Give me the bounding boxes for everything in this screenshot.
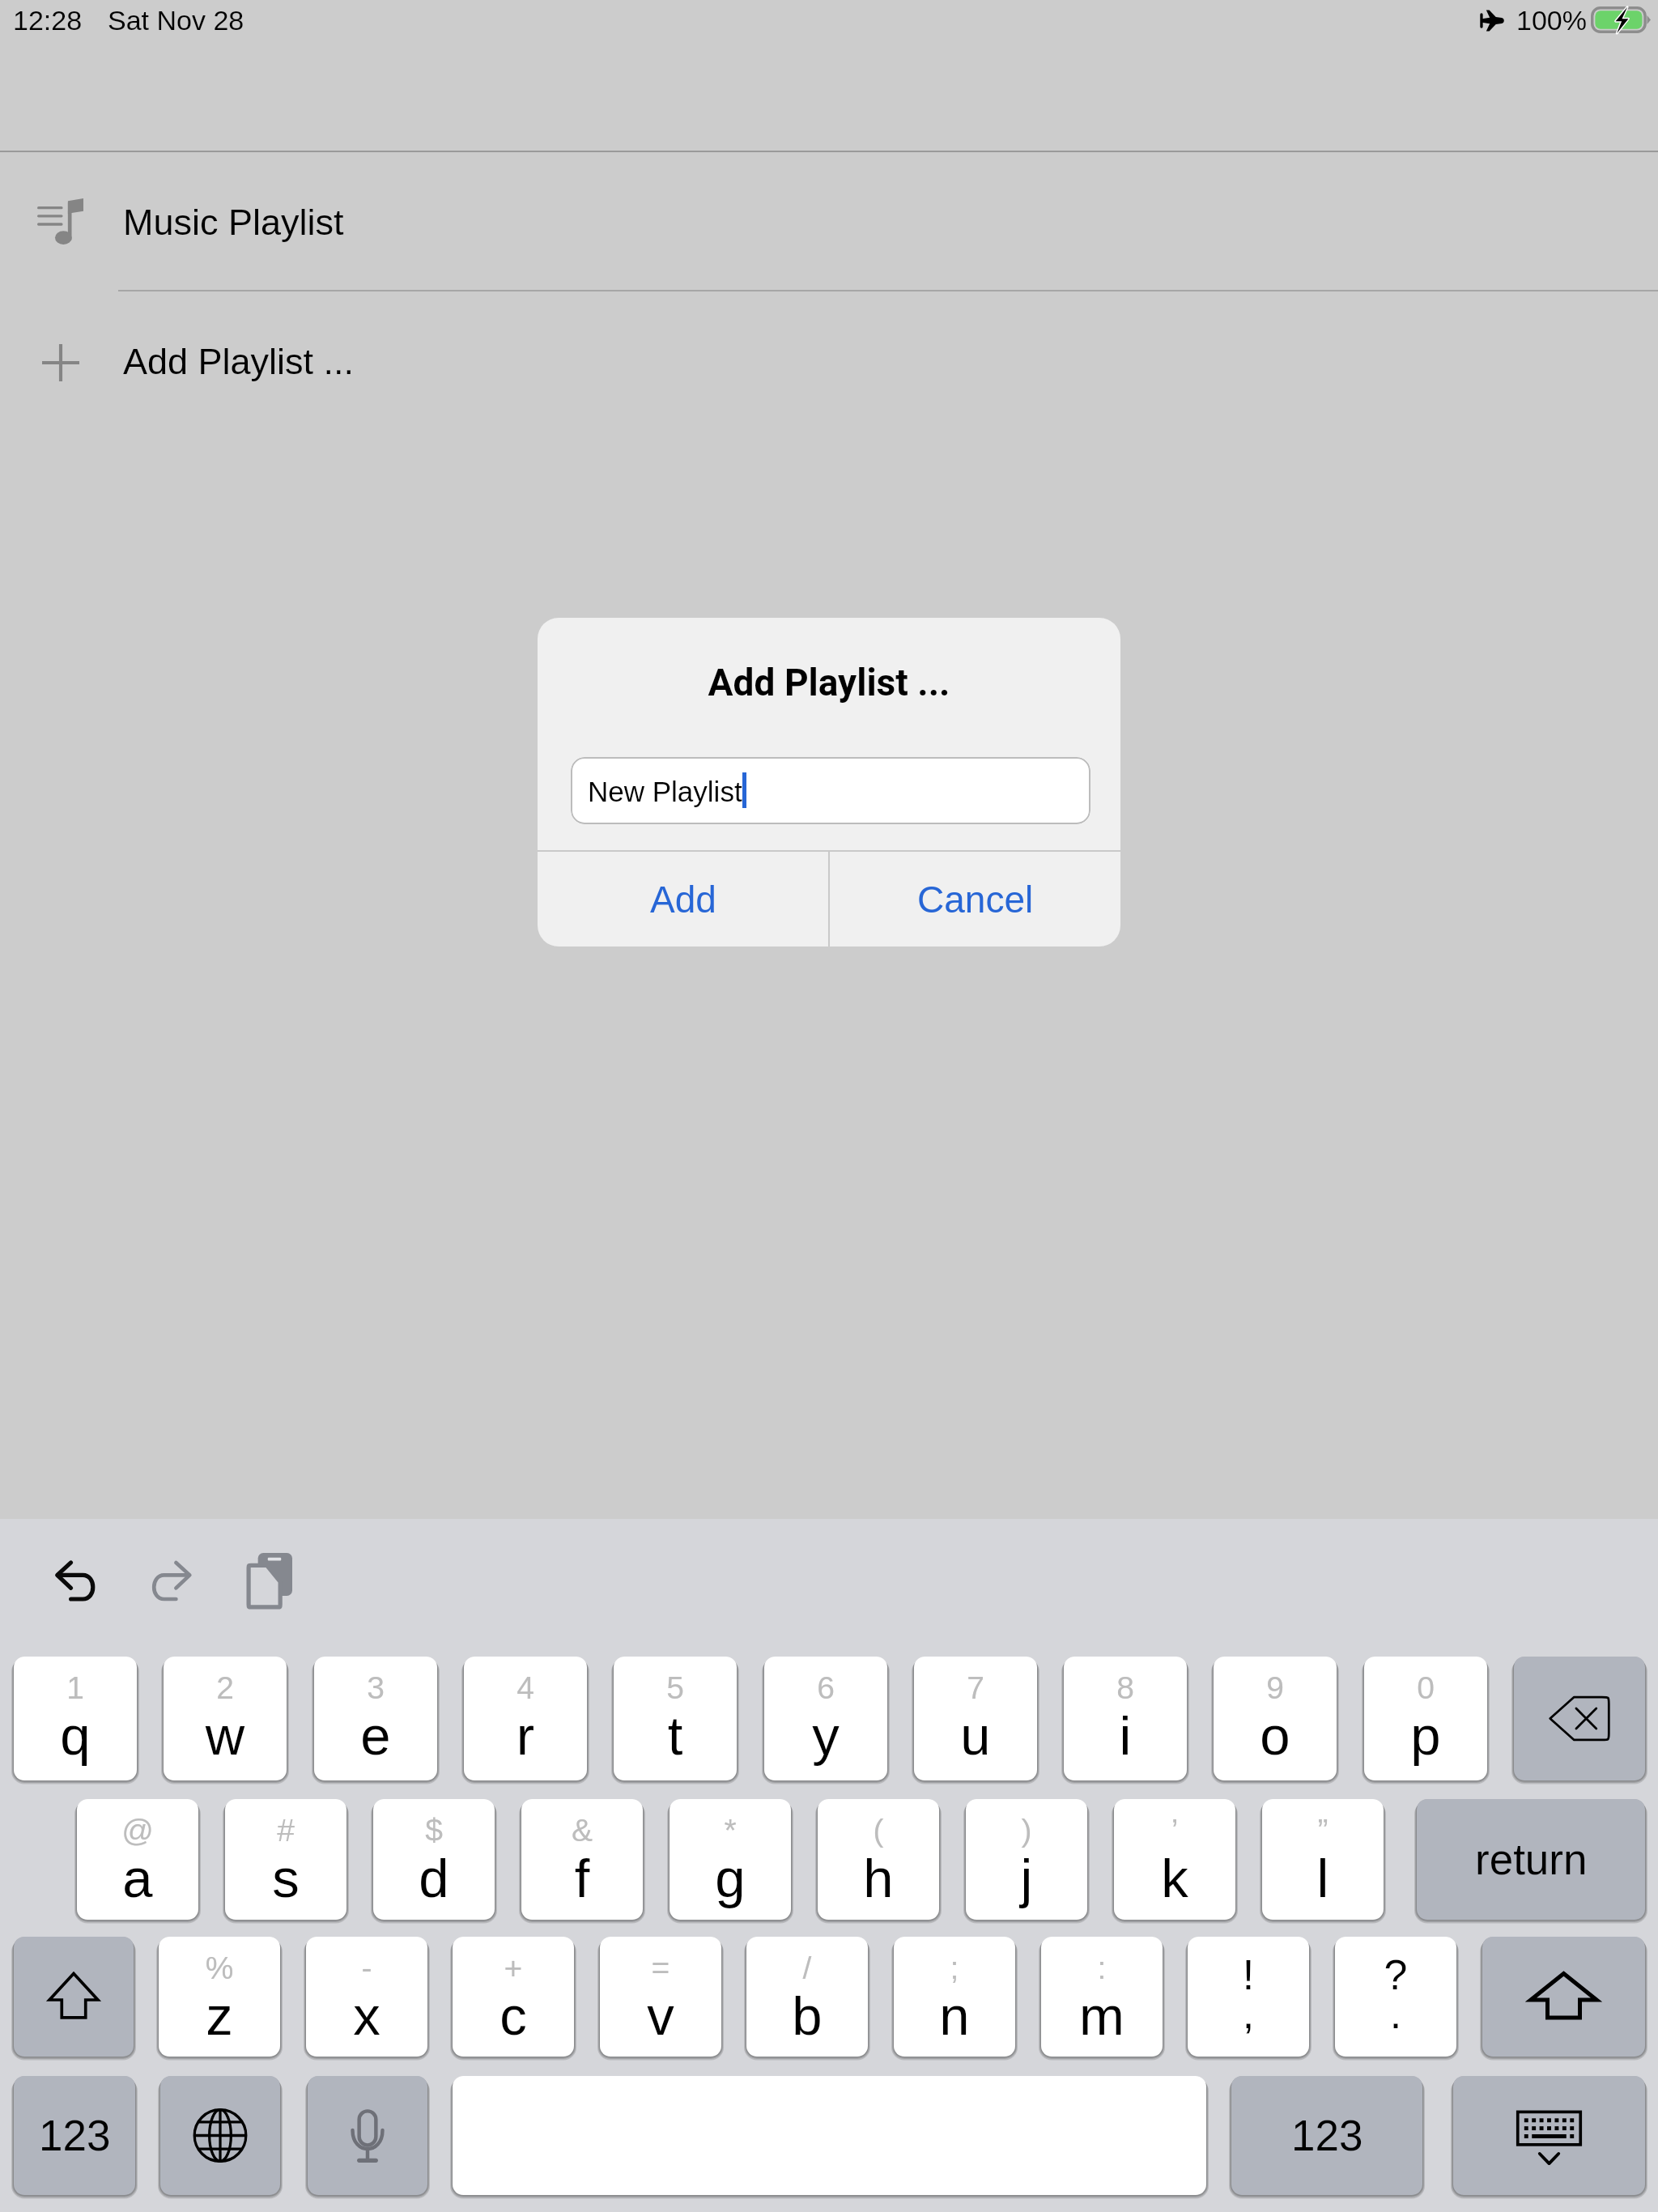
staticText: 0 <box>1364 1670 1487 1706</box>
staticText: @ <box>77 1813 198 1848</box>
staticText: ) <box>966 1813 1087 1848</box>
staticText: Music Playlist <box>123 202 344 242</box>
button[interactable]: 123 <box>1231 2076 1422 2195</box>
staticText: % <box>159 1950 280 1986</box>
staticText: - <box>306 1950 427 1986</box>
staticText: * <box>670 1813 791 1848</box>
staticText: 1 <box>14 1670 137 1706</box>
staticText: 6 <box>764 1670 887 1706</box>
button[interactable]: New Playlist <box>571 757 1090 824</box>
staticText: : <box>1041 1950 1163 1986</box>
button[interactable]: Change keyboard <box>160 2076 280 2195</box>
staticText: k <box>1114 1848 1235 1908</box>
staticText: 9 <box>1214 1670 1337 1706</box>
button[interactable]: 8 <box>1064 1657 1187 1780</box>
button[interactable]: ) <box>966 1799 1087 1920</box>
button[interactable]: = <box>600 1937 721 2057</box>
staticText: g <box>670 1848 791 1908</box>
button[interactable]: ? <box>1335 1937 1456 2057</box>
staticText: 12:28 <box>13 5 83 36</box>
staticText: 2 <box>164 1670 287 1706</box>
button[interactable]: 2 <box>164 1657 287 1780</box>
staticText: ; <box>894 1950 1015 1986</box>
button[interactable]: + <box>453 1937 574 2057</box>
button[interactable]: 3 <box>314 1657 437 1780</box>
staticText: u <box>914 1705 1037 1766</box>
staticText: 123 <box>39 2112 111 2159</box>
button[interactable]: ; <box>894 1937 1015 2057</box>
button[interactable]: 6 <box>764 1657 887 1780</box>
staticText: 7 <box>914 1670 1037 1706</box>
button[interactable]: return <box>1417 1799 1645 1920</box>
staticText: # <box>225 1813 346 1848</box>
button[interactable]: ’ <box>1114 1799 1235 1920</box>
button[interactable]: Shift <box>14 1937 134 2057</box>
button[interactable]: Backspace <box>1514 1657 1645 1780</box>
button[interactable]: Music Playlist <box>0 152 1658 291</box>
staticText: d <box>373 1848 495 1908</box>
staticText: a <box>77 1848 198 1908</box>
staticText: q <box>14 1705 137 1766</box>
button[interactable]: % <box>159 1937 280 2057</box>
button[interactable]: $ <box>373 1799 495 1920</box>
staticText: f <box>521 1848 643 1908</box>
button[interactable]: Cancel <box>830 852 1120 946</box>
staticText: ( <box>818 1813 939 1848</box>
staticText: ” <box>1262 1813 1384 1848</box>
button[interactable]: Shift <box>1482 1937 1645 2057</box>
button[interactable]: * <box>670 1799 791 1920</box>
button[interactable]: 0 <box>1364 1657 1487 1780</box>
button[interactable]: Add Playlist ... <box>0 291 1658 430</box>
button[interactable]: 9 <box>1214 1657 1337 1780</box>
staticText: 100% <box>1516 5 1587 36</box>
staticText: . <box>1335 1990 1456 2037</box>
button[interactable]: Hide keyboard <box>1453 2076 1645 2195</box>
staticText: 3 <box>314 1670 437 1706</box>
staticText: c <box>453 1985 574 2046</box>
button[interactable]: Add <box>538 852 828 946</box>
button[interactable]: 5 <box>614 1657 737 1780</box>
button[interactable]: 7 <box>914 1657 1037 1780</box>
button[interactable]: ” <box>1262 1799 1384 1920</box>
staticText: Sat Nov 28 <box>108 5 244 36</box>
button[interactable]: 4 <box>464 1657 587 1780</box>
button[interactable]: / <box>746 1937 868 2057</box>
staticText: z <box>159 1985 280 2046</box>
button[interactable]: @ <box>77 1799 198 1920</box>
button[interactable]: 123 <box>14 2076 135 2195</box>
staticText: 8 <box>1064 1670 1187 1706</box>
staticText: Cancel <box>917 878 1034 920</box>
staticText: w <box>164 1705 287 1766</box>
staticText: , <box>1188 1990 1309 2037</box>
button[interactable]: # <box>225 1799 346 1920</box>
staticText: t <box>614 1705 737 1766</box>
staticText: 5 <box>614 1670 737 1706</box>
button[interactable]: Redo <box>152 1561 192 1601</box>
staticText: x <box>306 1985 427 2046</box>
button[interactable]: Undo <box>55 1561 95 1601</box>
button[interactable]: ( <box>818 1799 939 1920</box>
staticText: + <box>453 1950 574 1986</box>
staticText: i <box>1064 1705 1187 1766</box>
staticText: r <box>464 1705 587 1766</box>
button[interactable]: - <box>306 1937 427 2057</box>
staticText: h <box>818 1848 939 1908</box>
staticText: j <box>966 1848 1087 1908</box>
button[interactable]: ! <box>1188 1937 1309 2057</box>
button[interactable]: Paste <box>248 1553 292 1608</box>
staticText: = <box>600 1950 721 1986</box>
staticText: 4 <box>464 1670 587 1706</box>
staticText: v <box>600 1985 721 2046</box>
staticText: e <box>314 1705 437 1766</box>
button[interactable]: : <box>1041 1937 1163 2057</box>
staticText: p <box>1364 1705 1487 1766</box>
staticText: o <box>1214 1705 1337 1766</box>
staticText: $ <box>373 1813 495 1848</box>
button[interactable]: 1 <box>14 1657 137 1780</box>
button[interactable]: & <box>521 1799 643 1920</box>
staticText: ? <box>1335 1951 1456 1998</box>
button[interactable]: Dictate <box>308 2076 427 2195</box>
staticText: b <box>746 1985 868 2046</box>
staticText: m <box>1041 1985 1163 2046</box>
